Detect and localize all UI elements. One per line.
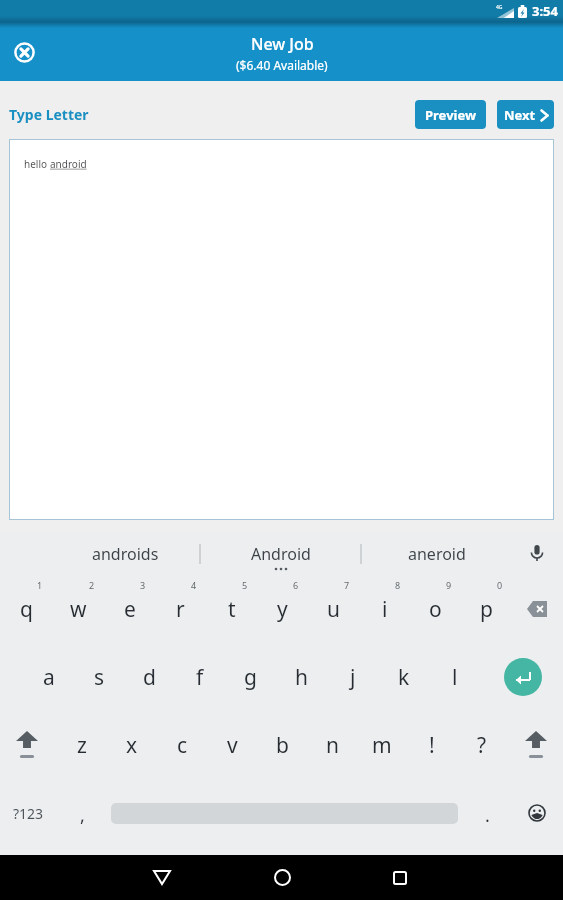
button[interactable]: m [357,711,407,779]
staticText: k [398,663,410,692]
staticText: 0 [497,579,503,591]
staticText: e [124,595,136,624]
button[interactable] [378,855,422,900]
staticText: android [50,157,87,171]
button[interactable]: ? [457,711,507,779]
staticText: h [295,663,308,692]
staticText: s [94,663,105,692]
button[interactable]: l [429,643,480,711]
button[interactable] [140,855,184,900]
staticText: a [43,663,55,692]
button[interactable]: d [124,643,174,711]
staticText: o [429,595,442,624]
button[interactable]: z [56,711,107,779]
staticText: 5 [242,579,248,591]
staticText: d [143,663,156,692]
button[interactable]: h [276,643,327,711]
staticText: androids [92,543,159,565]
button[interactable]: s [74,643,124,711]
staticText: y [277,595,288,624]
staticText: . [485,803,490,828]
button[interactable]: g [225,643,276,711]
staticText: 8 [395,579,401,591]
staticText: New Job [251,33,314,55]
button[interactable]: i [359,575,410,643]
staticText: hello [24,157,50,171]
staticText: f [196,663,204,692]
button[interactable]: ?123 [0,779,56,847]
button[interactable]: y [257,575,308,643]
button[interactable]: x [107,711,157,779]
staticText: g [244,663,257,692]
staticText: n [326,731,339,760]
staticText: ! [429,731,435,760]
button[interactable]: hello [9,139,554,520]
button[interactable]: a [24,643,74,711]
button[interactable] [522,539,552,569]
staticText: c [177,731,188,760]
button[interactable] [260,855,304,900]
button[interactable]: Android [211,533,351,575]
staticText: Android [251,543,311,565]
button[interactable]: v [207,711,257,779]
button[interactable]: ! [407,711,457,779]
button[interactable]: j [327,643,378,711]
staticText: i [382,595,388,624]
staticText: ($6.40 Available) [236,57,328,73]
button[interactable]: , [62,779,102,847]
button[interactable] [504,658,542,696]
staticText: Next [504,106,536,124]
staticText: r [176,595,185,624]
button[interactable]: p [461,575,512,643]
button[interactable]: c [157,711,207,779]
staticText: 7 [344,579,350,591]
staticText: b [276,731,289,760]
button[interactable]: . [467,779,507,847]
button[interactable]: o [410,575,461,643]
staticText: 6 [293,579,299,591]
staticText: 4G [496,4,503,11]
staticText: Preview [425,106,477,124]
staticText: u [327,595,340,624]
staticText: 9 [446,579,452,591]
staticText: t [228,595,236,624]
staticText: z [77,731,87,760]
button[interactable]: b [257,711,307,779]
staticText: v [227,731,238,760]
button[interactable]: Preview [415,100,486,129]
button[interactable]: k [378,643,429,711]
button[interactable]: Next [497,100,554,129]
button[interactable]: n [307,711,357,779]
staticText: 3:54 [532,2,558,20]
staticText: 4 [191,579,197,591]
button[interactable]: u [308,575,359,643]
staticText: Type Letter [9,105,89,124]
button[interactable]: q [0,575,52,643]
button[interactable]: aneroid [367,533,507,575]
staticText: p [480,595,493,624]
staticText: , [80,803,85,828]
button[interactable]: r [155,575,206,643]
staticText: l [452,663,458,692]
button[interactable]: t [206,575,257,643]
staticText: x [126,731,138,760]
staticText: j [350,663,356,692]
button[interactable]: w [52,575,104,643]
staticText: aneroid [408,543,466,565]
staticText: 1 [37,579,43,591]
staticText: ?123 [13,804,44,823]
staticText: m [372,731,392,760]
staticText: w [70,595,87,624]
staticText: ? [477,731,487,760]
staticText: 3 [140,579,146,591]
button[interactable] [517,793,557,833]
button[interactable] [0,711,54,779]
staticText: 2 [89,579,95,591]
button[interactable] [512,575,563,643]
button[interactable]: androids [55,533,195,575]
button[interactable] [10,38,38,66]
button[interactable]: f [174,643,225,711]
button[interactable]: e [104,575,155,643]
button[interactable] [509,711,563,779]
